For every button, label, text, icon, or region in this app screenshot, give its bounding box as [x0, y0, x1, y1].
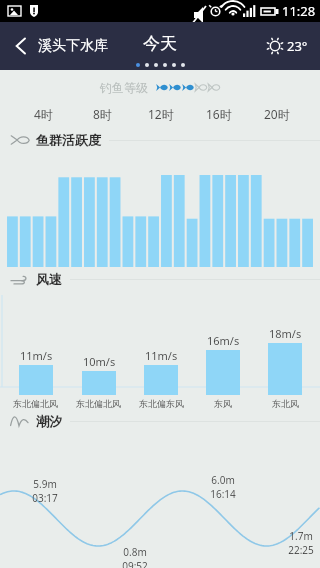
staticText: 23°: [287, 37, 308, 55]
other: Weather: [266, 37, 284, 55]
staticText: 潮汐: [36, 413, 62, 429]
staticText: 东风: [214, 398, 232, 409]
staticText: 今天: [143, 33, 177, 54]
other: Back: [12, 35, 30, 57]
staticText: 11m/s: [20, 348, 53, 363]
staticText: 18m/s: [269, 326, 302, 341]
staticText: 12时: [148, 106, 174, 122]
staticText: 东北偏北风: [13, 398, 58, 409]
staticText: 东北风: [272, 398, 299, 409]
staticText: 4时: [34, 106, 53, 122]
staticText: 11:28: [282, 2, 316, 20]
staticText: 10m/s: [83, 354, 116, 369]
button[interactable]: Weather: [262, 33, 312, 59]
staticText: 东北偏北风: [76, 398, 121, 409]
staticText: 钓鱼等级: [100, 80, 148, 95]
staticText: 11m/s: [145, 348, 178, 363]
staticText: 0.8m 09:52: [122, 545, 148, 568]
staticText: 鱼群活跃度: [36, 132, 101, 148]
staticText: 16时: [206, 106, 232, 122]
staticText: 8时: [93, 106, 112, 122]
staticText: 风速: [36, 271, 62, 287]
staticText: 6.0m 16:14: [210, 473, 236, 501]
staticText: 20时: [264, 106, 290, 122]
staticText: 1.7m 22:25: [288, 529, 314, 557]
staticText: 16m/s: [207, 333, 240, 348]
button[interactable]: Back: [6, 31, 114, 61]
staticText: 5.9m 03:17: [32, 477, 58, 505]
staticText: 东北偏东风: [139, 398, 184, 409]
staticText: 溪头下水库: [38, 37, 108, 55]
